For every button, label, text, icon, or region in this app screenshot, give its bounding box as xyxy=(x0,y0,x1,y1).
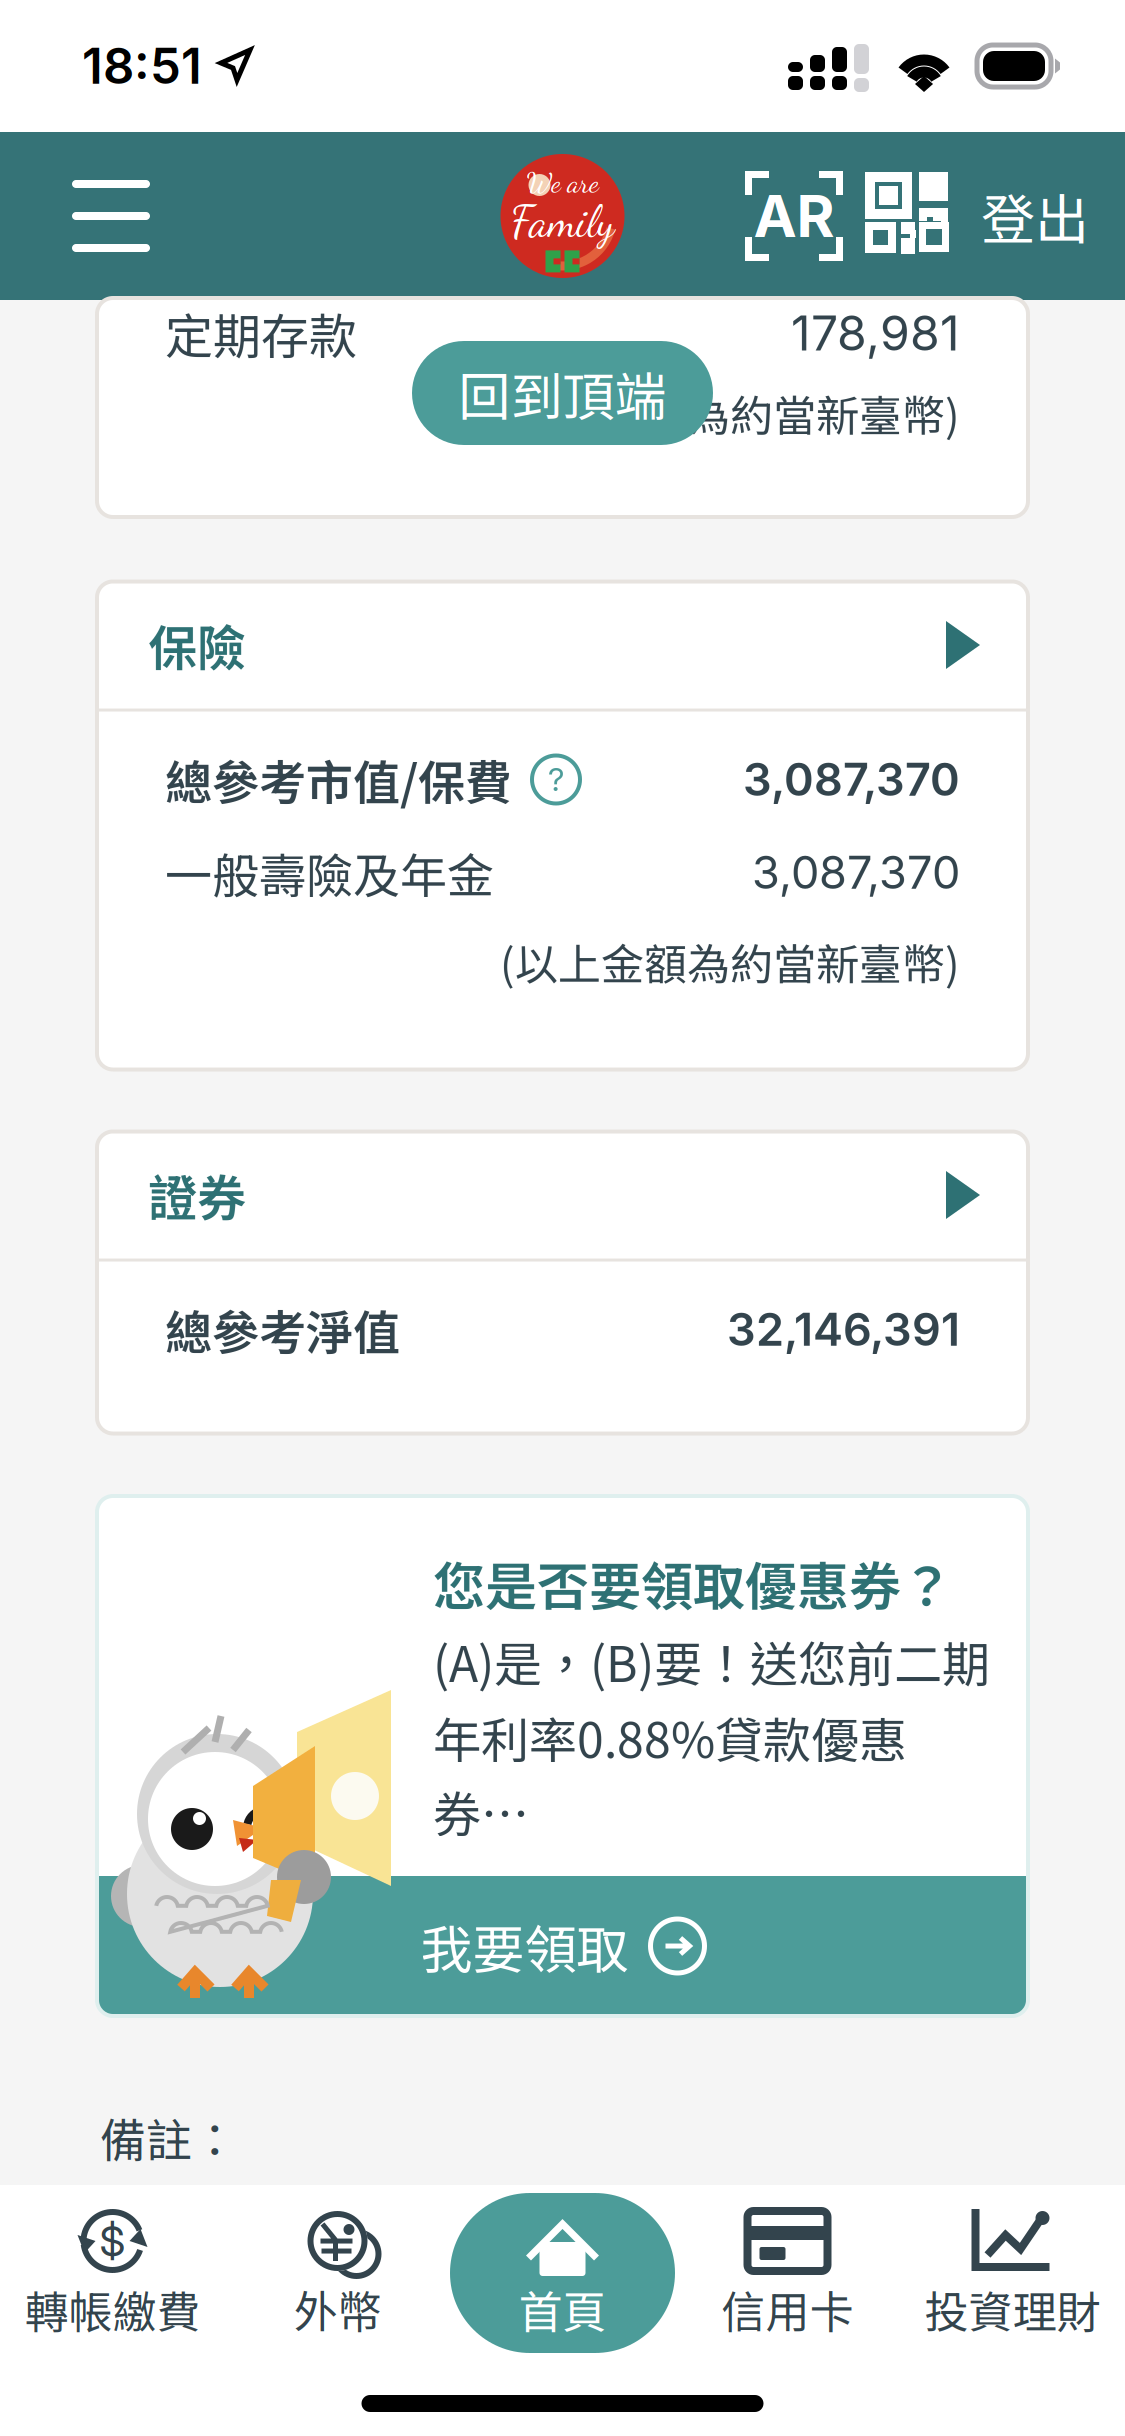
button[interactable]: QR code scanner xyxy=(843,168,955,264)
button[interactable]: $ xyxy=(0,2193,225,2353)
staticText: 備註： xyxy=(100,2104,238,2171)
staticText: 轉帳繳費 xyxy=(24,2277,200,2341)
staticText: 178,981 xyxy=(791,304,960,362)
staticText: 券… xyxy=(433,1776,529,1846)
button[interactable]: Menu xyxy=(72,132,150,300)
staticText: 3,087,370 xyxy=(752,845,960,900)
button[interactable]: 首頁 xyxy=(450,2193,675,2353)
staticText: 信用卡 xyxy=(721,2277,853,2341)
button[interactable]: 證券 xyxy=(97,1131,1028,1258)
staticText: 32,146,391 xyxy=(727,1302,960,1357)
staticText: 投資理財 xyxy=(924,2277,1100,2341)
button[interactable]: 我要領取 xyxy=(97,1876,1028,2016)
button[interactable]: 外幣 xyxy=(225,2193,450,2353)
staticText: 3,087,370 xyxy=(743,752,960,807)
staticText: We are xyxy=(526,166,598,200)
staticText: 首頁 xyxy=(518,2277,606,2341)
staticText: 18:51 xyxy=(82,36,202,96)
button[interactable]: 保險 xyxy=(97,581,1028,708)
staticText: 總參考市值/保費 xyxy=(165,745,512,814)
button[interactable]: 投資理財 xyxy=(900,2193,1125,2353)
staticText: 保險 xyxy=(148,609,246,680)
staticText: $ xyxy=(99,2216,125,2266)
staticText: 您是否要領取優惠券？ xyxy=(433,1545,953,1621)
staticText: 總參考淨值 xyxy=(165,1295,400,1364)
staticText: 定期存款 xyxy=(165,298,357,368)
staticText: 登出 xyxy=(981,177,1089,255)
button[interactable]: 登出 xyxy=(955,177,1089,255)
staticText: 一般壽險及年金 xyxy=(165,838,494,907)
button[interactable]: 回到頂端 xyxy=(412,341,713,445)
staticText: 證券 xyxy=(148,1159,246,1230)
staticText: (以上金額為約當新臺幣) xyxy=(500,382,960,444)
staticText: ? xyxy=(548,760,564,799)
staticText: 回到頂端 xyxy=(458,355,666,431)
staticText: AR xyxy=(753,181,834,251)
button[interactable]: AR xyxy=(745,168,843,264)
staticText: (以上金額為約當新臺幣) xyxy=(500,930,960,993)
button[interactable]: 信用卡 xyxy=(675,2193,900,2353)
staticText: (A)是，(B)要！送您前二期 xyxy=(433,1626,990,1696)
staticText: 我要領取 xyxy=(420,1908,628,1984)
staticText: 外幣 xyxy=(293,2277,381,2341)
staticText: Family xyxy=(510,196,614,248)
staticText: 年利率0.88%貸款優惠 xyxy=(433,1702,907,1772)
